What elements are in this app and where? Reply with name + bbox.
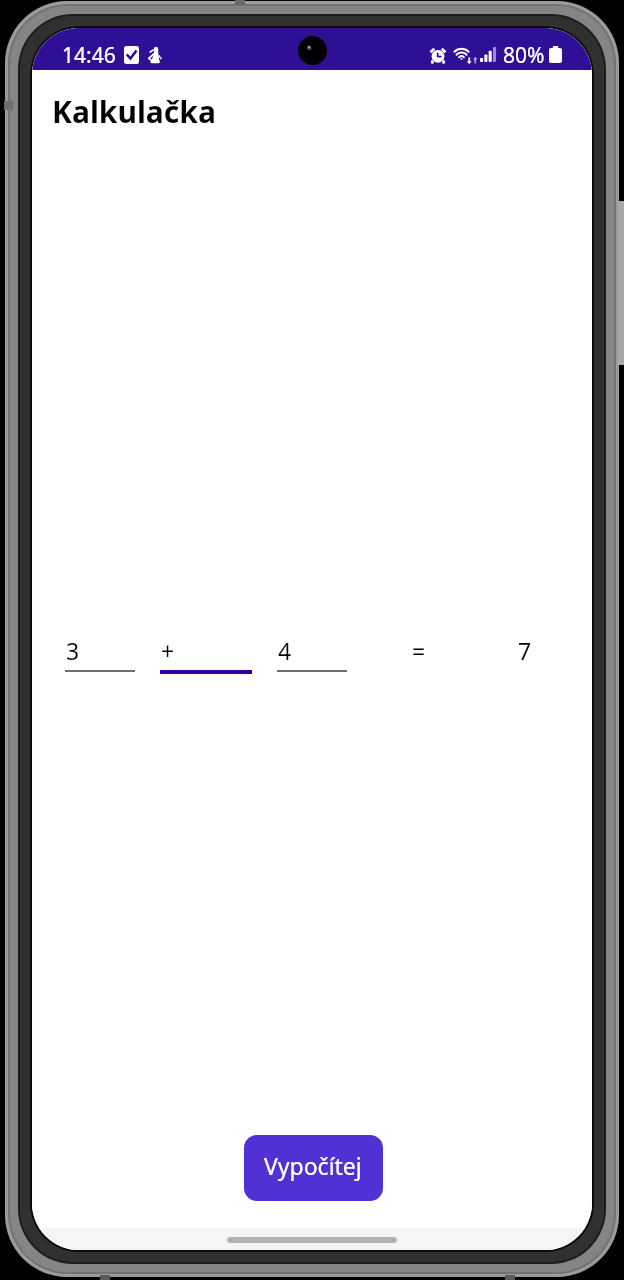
staticText: = (412, 635, 426, 666)
staticText: 4 (278, 635, 292, 666)
button[interactable]: + (160, 628, 252, 680)
staticText: 7 (518, 635, 532, 666)
staticText: + (161, 635, 175, 666)
button[interactable]: Vypočítej (244, 1135, 383, 1201)
staticText: 3 (66, 635, 80, 666)
other: Mobile signal (480, 47, 496, 62)
other: Battery 80 percent (549, 46, 562, 63)
other: Wi-Fi (452, 46, 477, 63)
staticText: Vypočítej (264, 1150, 362, 1181)
other: App notification (147, 45, 163, 64)
staticText: 80% (503, 41, 545, 70)
button[interactable]: 4 (277, 628, 347, 680)
button[interactable]: 3 (65, 628, 135, 680)
other: Alarm set (430, 47, 446, 63)
other: Tasks (124, 46, 139, 64)
staticText: 14:46 (62, 41, 116, 70)
staticText: Kalkulačka (52, 91, 216, 132)
